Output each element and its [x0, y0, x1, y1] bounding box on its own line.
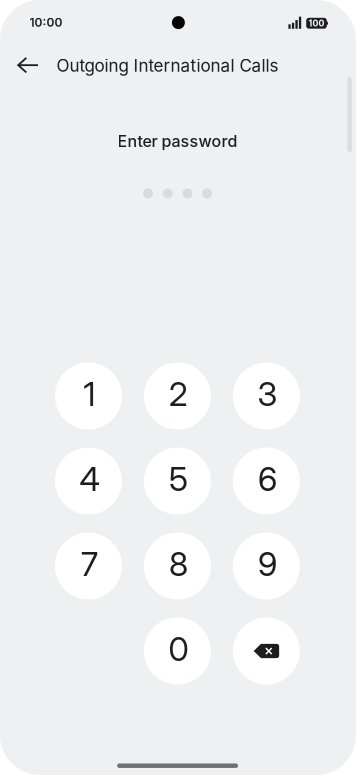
- button[interactable]: 2: [144, 362, 211, 429]
- button[interactable]: 4: [55, 447, 122, 514]
- staticText: 4: [80, 459, 100, 499]
- staticText: 9: [258, 544, 277, 584]
- staticText: 2: [169, 374, 188, 414]
- staticText: 1: [84, 374, 96, 414]
- staticText: 3: [258, 374, 278, 414]
- staticText: 5: [169, 459, 188, 499]
- staticText: Outgoing International Calls: [56, 55, 278, 76]
- staticText: 7: [81, 544, 98, 584]
- button[interactable]: 5: [144, 447, 211, 514]
- staticText: 0: [169, 629, 189, 669]
- staticText: 100: [308, 18, 324, 28]
- button[interactable]: 1: [55, 362, 122, 429]
- button[interactable]: Back: [6, 43, 50, 87]
- button[interactable]: 7: [55, 532, 122, 599]
- button[interactable]: 3: [233, 362, 300, 429]
- staticText: 6: [258, 459, 277, 499]
- button[interactable]: 0: [144, 617, 211, 684]
- button[interactable]: 6: [233, 447, 300, 514]
- button[interactable]: 9: [233, 532, 300, 599]
- staticText: Enter password: [118, 131, 238, 151]
- staticText: 10:00: [29, 15, 62, 30]
- button[interactable]: Delete: [233, 617, 300, 684]
- staticText: 8: [169, 544, 188, 584]
- button[interactable]: 8: [144, 532, 211, 599]
